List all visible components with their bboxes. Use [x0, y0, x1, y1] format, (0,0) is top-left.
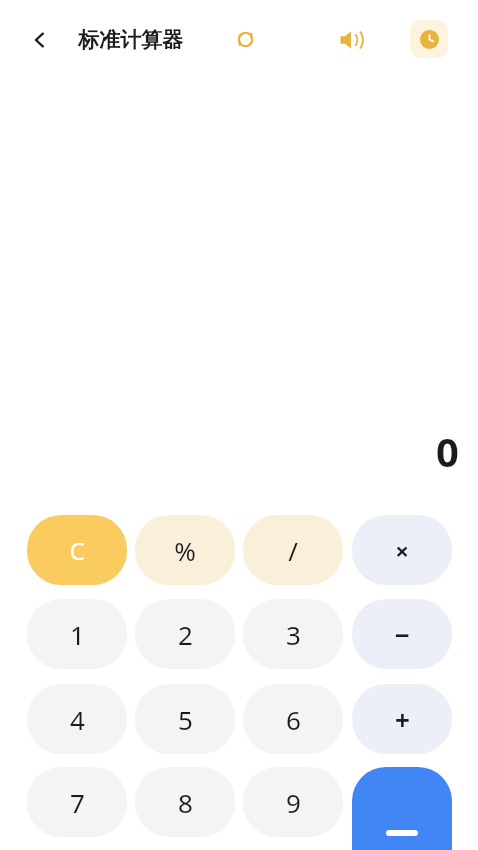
- staticText: 4: [70, 702, 85, 737]
- staticText: ×: [395, 534, 409, 567]
- button[interactable]: Sound: [332, 20, 372, 60]
- staticText: 3: [286, 617, 301, 652]
- button[interactable]: 3: [243, 599, 343, 669]
- button[interactable]: 9: [243, 767, 343, 837]
- button[interactable]: /: [243, 515, 343, 585]
- button[interactable]: 4: [27, 684, 127, 754]
- staticText: 标准计算器: [78, 27, 183, 53]
- button[interactable]: %: [135, 515, 235, 585]
- staticText: C: [69, 534, 85, 567]
- button[interactable]: Equals: [352, 767, 452, 850]
- button[interactable]: C: [27, 515, 127, 585]
- button[interactable]: Subtract: [352, 599, 452, 669]
- staticText: 5: [178, 702, 193, 737]
- button[interactable]: History: [410, 20, 448, 58]
- staticText: 0: [436, 424, 459, 476]
- button[interactable]: 6: [243, 684, 343, 754]
- staticText: 1: [70, 617, 85, 652]
- staticText: 2: [178, 617, 193, 652]
- button[interactable]: 8: [135, 767, 235, 837]
- button[interactable]: 5: [135, 684, 235, 754]
- button[interactable]: Multiply: [352, 515, 452, 585]
- button[interactable]: Add: [352, 684, 452, 754]
- button[interactable]: 2: [135, 599, 235, 669]
- staticText: /: [288, 533, 298, 568]
- button[interactable]: Switch mode: [228, 22, 262, 56]
- staticText: 8: [178, 785, 193, 820]
- button[interactable]: 1: [27, 599, 127, 669]
- staticText: −: [394, 617, 410, 652]
- staticText: 6: [286, 702, 301, 737]
- staticText: %: [174, 533, 196, 568]
- button[interactable]: Back: [20, 20, 60, 60]
- staticText: 9: [286, 785, 301, 820]
- button[interactable]: 7: [27, 767, 127, 837]
- staticText: +: [395, 702, 410, 737]
- staticText: 7: [70, 785, 85, 820]
